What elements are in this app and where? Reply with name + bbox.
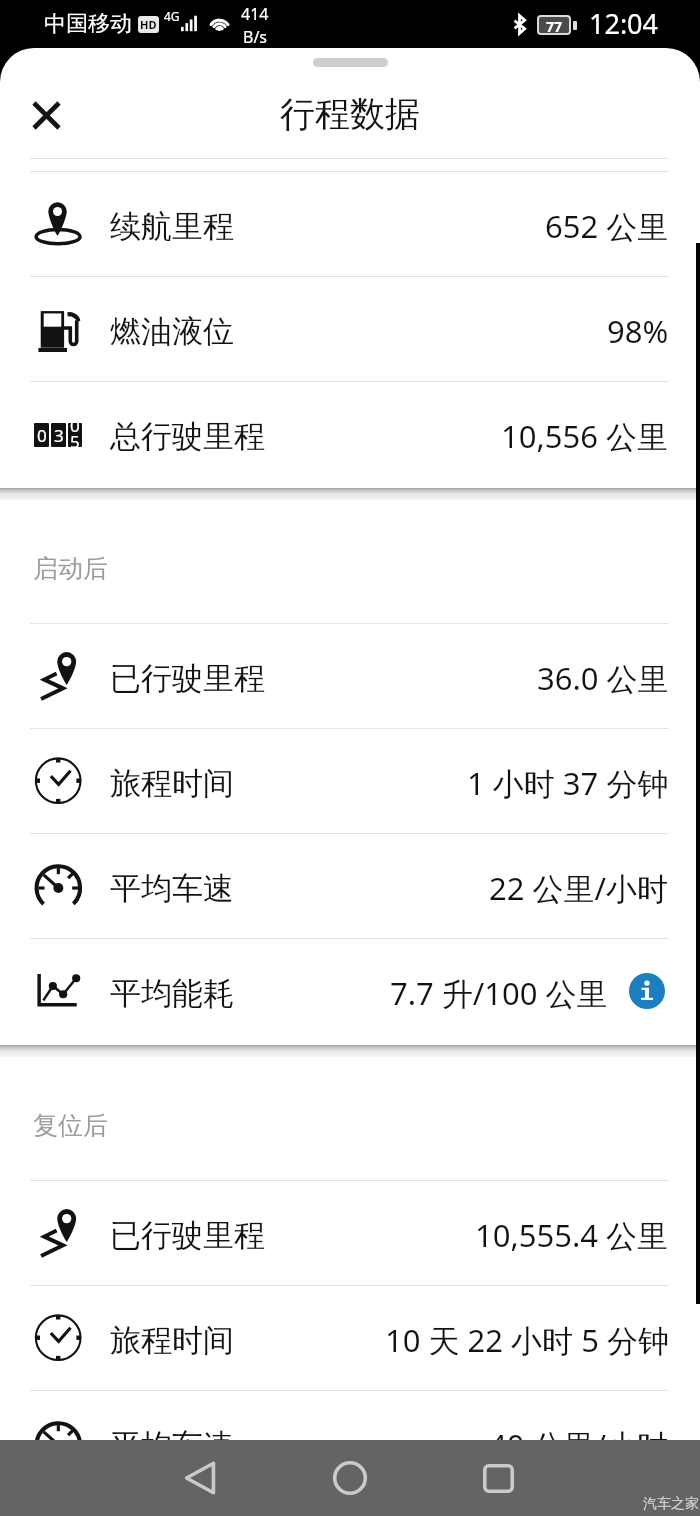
- staticText: 3: [54, 424, 64, 447]
- staticText: 0: [37, 424, 47, 447]
- staticText: 汽车之家: [643, 1495, 699, 1513]
- button[interactable]: 平均车速: [0, 1391, 700, 1495]
- staticText: 4G: [164, 8, 180, 24]
- button[interactable]: 平均能耗: [0, 939, 700, 1043]
- staticText: 已行驶里程: [110, 1216, 265, 1255]
- button[interactable]: Home: [319, 1447, 381, 1509]
- staticText: 36.0 公里: [537, 657, 669, 699]
- button[interactable]: 旅程时间: [0, 729, 700, 833]
- button[interactable]: 0: [0, 382, 700, 486]
- button[interactable]: 燃油液位: [0, 277, 700, 381]
- staticText: 7.7 升/100 公里: [390, 972, 608, 1014]
- button[interactable]: 续航里程: [0, 172, 700, 276]
- staticText: 10 天 22 小时 5 分钟: [385, 1319, 669, 1361]
- staticText: 98%: [607, 310, 669, 352]
- staticText: 平均能耗: [110, 974, 234, 1013]
- staticText: 燃油液位: [110, 312, 234, 351]
- staticText: 平均车速: [110, 1426, 234, 1465]
- staticText: 0: [70, 423, 80, 437]
- button[interactable]: 已行驶里程: [0, 624, 700, 728]
- staticText: 5: [70, 430, 80, 447]
- button[interactable]: 旅程时间: [0, 1286, 700, 1390]
- staticText: B/s: [243, 26, 268, 48]
- staticText: 行程数据: [280, 92, 420, 136]
- staticText: 652 公里: [545, 205, 669, 247]
- button[interactable]: Info: [629, 973, 665, 1009]
- staticText: 12:04: [589, 5, 659, 42]
- staticText: 旅程时间: [110, 764, 234, 803]
- button[interactable]: Close: [10, 79, 82, 151]
- staticText: 总行驶里程: [110, 417, 265, 456]
- staticText: 10,555.4 公里: [475, 1214, 669, 1256]
- staticText: 77: [546, 17, 563, 33]
- staticText: 10,556 公里: [501, 415, 669, 457]
- staticText: 复位后: [33, 1110, 108, 1141]
- staticText: 中国移动: [44, 10, 132, 38]
- staticText: 414: [241, 3, 269, 25]
- staticText: 旅程时间: [110, 1321, 234, 1360]
- staticText: 22 公里/小时: [489, 867, 669, 909]
- staticText: 40 公里/小时: [489, 1424, 669, 1466]
- staticText: 续航里程: [110, 207, 234, 246]
- staticText: 已行驶里程: [110, 659, 265, 698]
- button[interactable]: 平均车速: [0, 834, 700, 938]
- button[interactable]: Recents: [467, 1447, 529, 1509]
- button[interactable]: Back: [169, 1447, 231, 1509]
- staticText: HD: [140, 17, 157, 32]
- staticText: 1 小时 37 分钟: [467, 762, 669, 804]
- staticText: 启动后: [33, 553, 108, 584]
- staticText: 平均车速: [110, 869, 234, 908]
- button[interactable]: 已行驶里程: [0, 1181, 700, 1285]
